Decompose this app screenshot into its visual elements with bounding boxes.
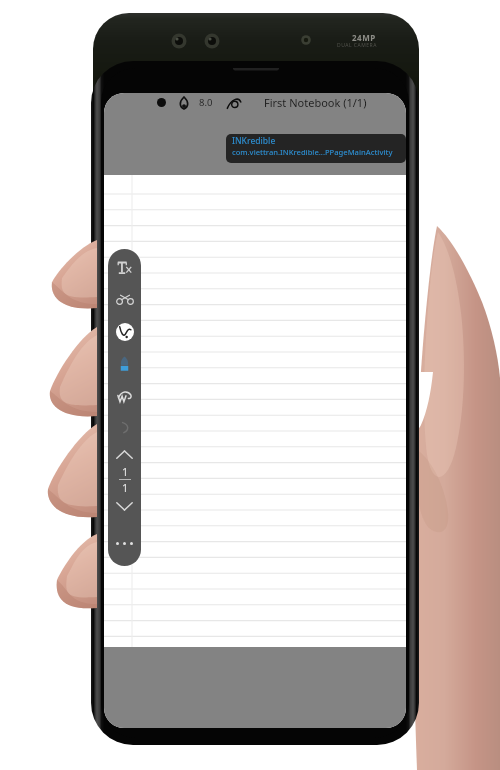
button[interactable]: Page 1 of 1 (108, 464, 141, 494)
button[interactable]: Highlighter (108, 349, 141, 379)
staticText: 1 (122, 464, 129, 479)
button[interactable]: More options (108, 528, 141, 558)
staticText: com.viettran.INKredible...PPageMainActiv… (232, 147, 393, 157)
button[interactable]: Pen (108, 317, 141, 347)
button[interactable]: Undo (108, 412, 141, 442)
button[interactable]: Previous page (108, 439, 141, 469)
button[interactable]: Text tool (108, 253, 141, 283)
button[interactable]: Next page (108, 491, 141, 521)
staticText: 8.0 (199, 96, 213, 109)
staticText: 24MP (352, 32, 376, 43)
staticText: DUAL CAMERA (337, 42, 377, 49)
staticText: 1 (122, 480, 129, 494)
button[interactable]: Lasso select (108, 285, 141, 315)
button[interactable]: Eraser (108, 381, 141, 411)
staticText: First Notebook (1/1) (264, 95, 367, 110)
staticText: INKredible (232, 135, 276, 147)
